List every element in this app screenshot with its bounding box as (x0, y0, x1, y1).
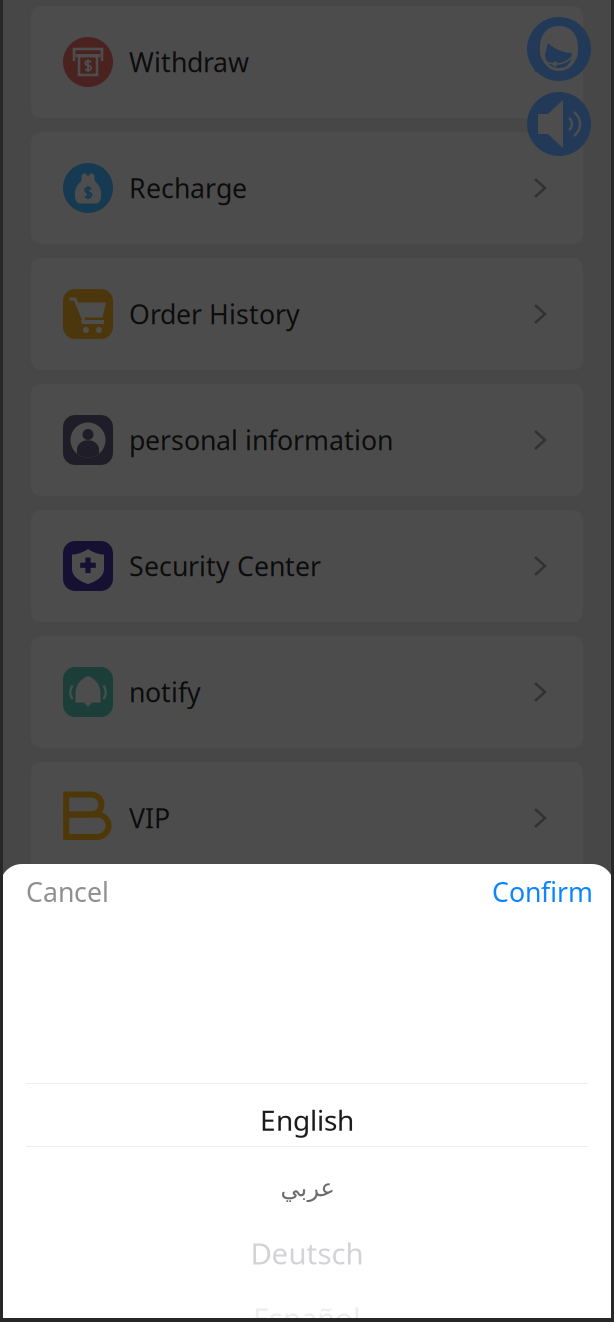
staticText: Confirm (492, 874, 593, 909)
button[interactable]: Sound (527, 92, 591, 156)
staticText: Order History (129, 296, 300, 332)
button[interactable]: VIP (31, 762, 583, 874)
staticText: English (260, 1101, 354, 1139)
staticText: personal information (129, 422, 393, 458)
staticText: Español (253, 1298, 361, 1322)
staticText: Withdraw (129, 44, 249, 80)
staticText: Cancel (26, 874, 109, 909)
button[interactable]: Deutsch (0, 1221, 614, 1285)
staticText: VIP (129, 800, 170, 836)
staticText: Deutsch (250, 1233, 363, 1272)
button[interactable]: Withdraw (31, 6, 583, 118)
staticText: Security Center (129, 548, 321, 584)
staticText: عربي (280, 1174, 334, 1202)
button[interactable]: Confirm (466, 860, 614, 923)
button[interactable]: Español (0, 1286, 614, 1322)
staticText: notify (129, 674, 201, 710)
button[interactable]: Security Center (31, 510, 583, 622)
button[interactable]: personal information (31, 384, 583, 496)
button[interactable]: عربي (0, 1156, 614, 1220)
button[interactable]: Recharge (31, 132, 583, 244)
button[interactable]: notify (31, 636, 583, 748)
button[interactable]: Customer support (527, 17, 591, 81)
staticText: Recharge (129, 170, 247, 206)
button[interactable]: Cancel (0, 860, 135, 923)
button[interactable]: English (0, 1088, 614, 1152)
button[interactable]: Order History (31, 258, 583, 370)
